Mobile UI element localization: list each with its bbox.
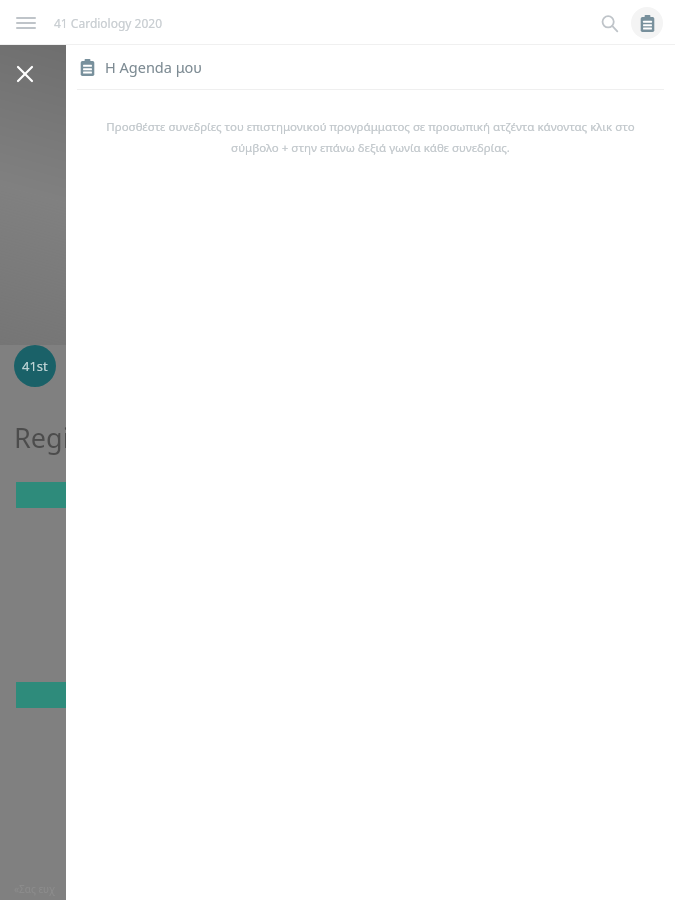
button[interactable]: Close xyxy=(8,57,42,91)
staticText: Προσθέστε συνεδρίες του επιστημονικού πρ… xyxy=(84,119,657,156)
staticText: Regis xyxy=(14,419,83,456)
button[interactable] xyxy=(16,482,136,508)
staticText: 41st xyxy=(22,357,48,375)
staticText: Η Agenda μου xyxy=(105,57,203,77)
staticText: «Σας ευχ xyxy=(14,882,55,896)
button[interactable]: Menu xyxy=(12,9,40,37)
button[interactable] xyxy=(16,682,136,708)
staticText: 41 Cardiology 2020 xyxy=(54,15,163,31)
button[interactable]: Search xyxy=(593,7,625,39)
button[interactable]: My Agenda xyxy=(631,7,663,39)
